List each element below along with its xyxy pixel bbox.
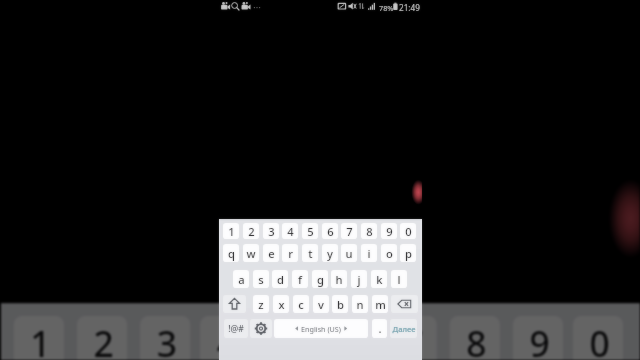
button[interactable]: 2 [77, 316, 127, 360]
button[interactable]: h [331, 270, 347, 288]
button[interactable]: 3 [263, 223, 279, 239]
button[interactable]: y [322, 244, 338, 262]
button[interactable]: f [292, 270, 308, 288]
button[interactable]: Далее [390, 319, 417, 338]
button[interactable]: e [263, 244, 279, 262]
button[interactable]: m [372, 295, 388, 313]
button[interactable]: 7 [341, 223, 357, 239]
button[interactable]: b [332, 295, 348, 313]
button[interactable]: 6 [322, 223, 338, 239]
button[interactable]: Keyboard settings [250, 319, 272, 338]
button[interactable]: d [272, 270, 288, 288]
button[interactable]: q [223, 244, 239, 262]
button[interactable]: v [313, 295, 329, 313]
button[interactable]: 0 [400, 223, 416, 239]
button[interactable]: Shift [223, 295, 246, 313]
button[interactable]: h [331, 270, 347, 288]
button[interactable]: 1 [14, 316, 64, 360]
button[interactable]: 1 [223, 223, 239, 239]
button[interactable]: y [322, 244, 338, 262]
button[interactable]: 0 [573, 316, 623, 360]
button[interactable]: t [302, 244, 318, 262]
button[interactable]: 9 [381, 223, 397, 239]
button[interactable]: u [341, 244, 357, 262]
button[interactable]: c [293, 295, 309, 313]
button[interactable]: !@# [224, 319, 248, 338]
button[interactable]: Backspace [391, 295, 418, 313]
button[interactable]: 4 [200, 316, 250, 360]
button[interactable]: w [243, 244, 259, 262]
button[interactable]: b [332, 295, 348, 313]
button[interactable]: 4 [282, 223, 298, 239]
button[interactable]: w [243, 244, 259, 262]
button[interactable]: t [302, 244, 318, 262]
button[interactable]: a [233, 270, 249, 288]
button[interactable]: 8 [361, 223, 377, 239]
button[interactable]: r [282, 244, 298, 262]
button[interactable]: o [381, 244, 397, 262]
button[interactable]: 4 [282, 223, 298, 239]
button[interactable]: q [223, 244, 239, 262]
button[interactable]: a [233, 270, 249, 288]
staticText: 1 [228, 224, 235, 239]
button[interactable]: u [341, 244, 357, 262]
button[interactable]: 9 [381, 223, 397, 239]
button[interactable]: 1 [223, 223, 239, 239]
button[interactable]: k [371, 270, 387, 288]
button[interactable]: k [371, 270, 387, 288]
button[interactable]: !@# [224, 319, 248, 338]
button[interactable]: Далее [390, 319, 417, 338]
button[interactable]: x [273, 295, 289, 313]
staticText: q [228, 246, 235, 261]
button[interactable]: n [352, 295, 368, 313]
button[interactable]: i [361, 244, 377, 262]
button[interactable]: f [292, 270, 308, 288]
button[interactable]: m [372, 295, 388, 313]
button[interactable]: r [282, 244, 298, 262]
button[interactable]: e [263, 244, 279, 262]
button[interactable]: 6 [322, 223, 338, 239]
button[interactable]: 3 [263, 223, 279, 239]
button[interactable]: c [293, 295, 309, 313]
button[interactable]: 2 [243, 223, 259, 239]
button[interactable]: 2 [243, 223, 259, 239]
button[interactable]: English (US) [274, 319, 368, 338]
button[interactable]: l [391, 270, 407, 288]
button[interactable]: English (US) [274, 319, 368, 338]
button[interactable]: . [372, 319, 387, 338]
button[interactable]: s [253, 270, 269, 288]
button[interactable]: 0 [400, 223, 416, 239]
button[interactable]: v [313, 295, 329, 313]
button[interactable]: . [372, 319, 387, 338]
button[interactable]: p [400, 244, 416, 262]
button[interactable]: 7 [341, 223, 357, 239]
button[interactable]: 8 [449, 316, 500, 360]
button[interactable]: 6 [326, 316, 377, 360]
button[interactable]: i [361, 244, 377, 262]
button[interactable]: n [352, 295, 368, 313]
button[interactable]: g [312, 270, 328, 288]
button[interactable]: p [400, 244, 416, 262]
button[interactable]: o [381, 244, 397, 262]
button[interactable]: z [253, 295, 269, 313]
button[interactable]: 7 [386, 316, 437, 360]
staticText: g [317, 272, 324, 287]
button[interactable]: j [351, 270, 367, 288]
button[interactable]: l [391, 270, 407, 288]
button[interactable]: 8 [361, 223, 377, 239]
button[interactable]: 3 [140, 316, 190, 360]
button[interactable]: j [351, 270, 367, 288]
button[interactable]: Backspace [391, 295, 418, 313]
button[interactable]: x [273, 295, 289, 313]
button[interactable]: 5 [263, 316, 314, 360]
button[interactable]: 5 [302, 223, 318, 239]
button[interactable]: d [272, 270, 288, 288]
button[interactable]: 9 [513, 316, 563, 360]
button[interactable]: Keyboard settings [250, 319, 272, 338]
button[interactable]: Shift [223, 295, 246, 313]
button[interactable]: s [253, 270, 269, 288]
staticText: k [376, 272, 383, 287]
button[interactable]: z [253, 295, 269, 313]
button[interactable]: g [312, 270, 328, 288]
button[interactable]: 5 [302, 223, 318, 239]
